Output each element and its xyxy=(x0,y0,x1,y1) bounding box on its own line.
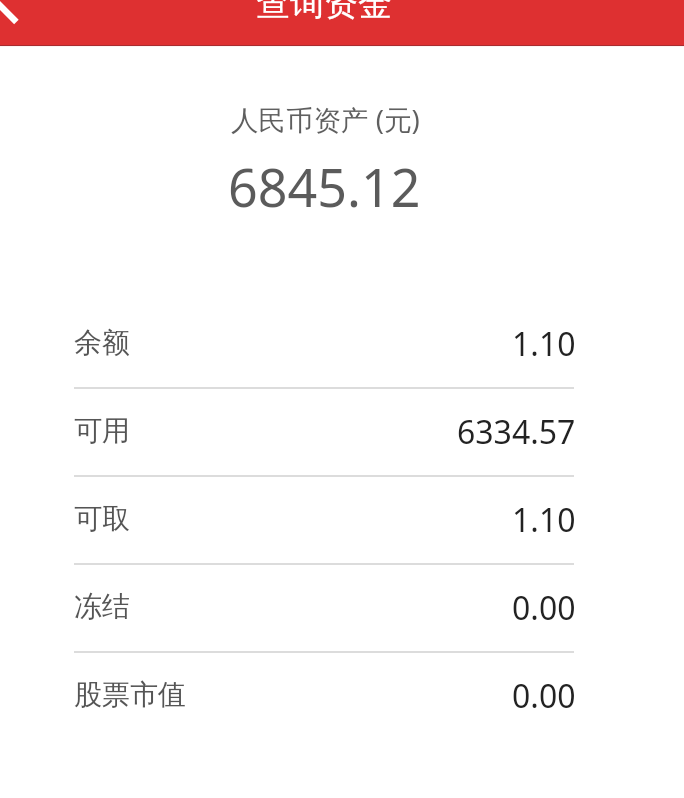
staticText: 0.00 xyxy=(512,674,576,718)
button[interactable]: 可取 xyxy=(74,474,576,562)
button[interactable]: 冻结 xyxy=(74,562,576,650)
staticText: 可取 xyxy=(74,501,130,536)
staticText: 余额 xyxy=(74,325,130,360)
staticText: 1.10 xyxy=(512,498,576,542)
staticText: 0.00 xyxy=(512,586,576,630)
staticText: 股票市值 xyxy=(74,677,186,712)
button[interactable]: 股票市值 xyxy=(74,650,576,738)
staticText: 可用 xyxy=(74,413,130,448)
staticText: 1.10 xyxy=(512,322,576,366)
button[interactable]: 余额 xyxy=(74,298,576,386)
staticText: 查询资金 xyxy=(256,0,392,25)
button[interactable]: 可用 xyxy=(74,386,576,474)
staticText: 6334.57 xyxy=(457,410,576,454)
staticText: 冻结 xyxy=(74,589,130,624)
staticText: 6845.12 xyxy=(228,151,421,222)
staticText: 人民币资产 (元) xyxy=(231,101,420,139)
